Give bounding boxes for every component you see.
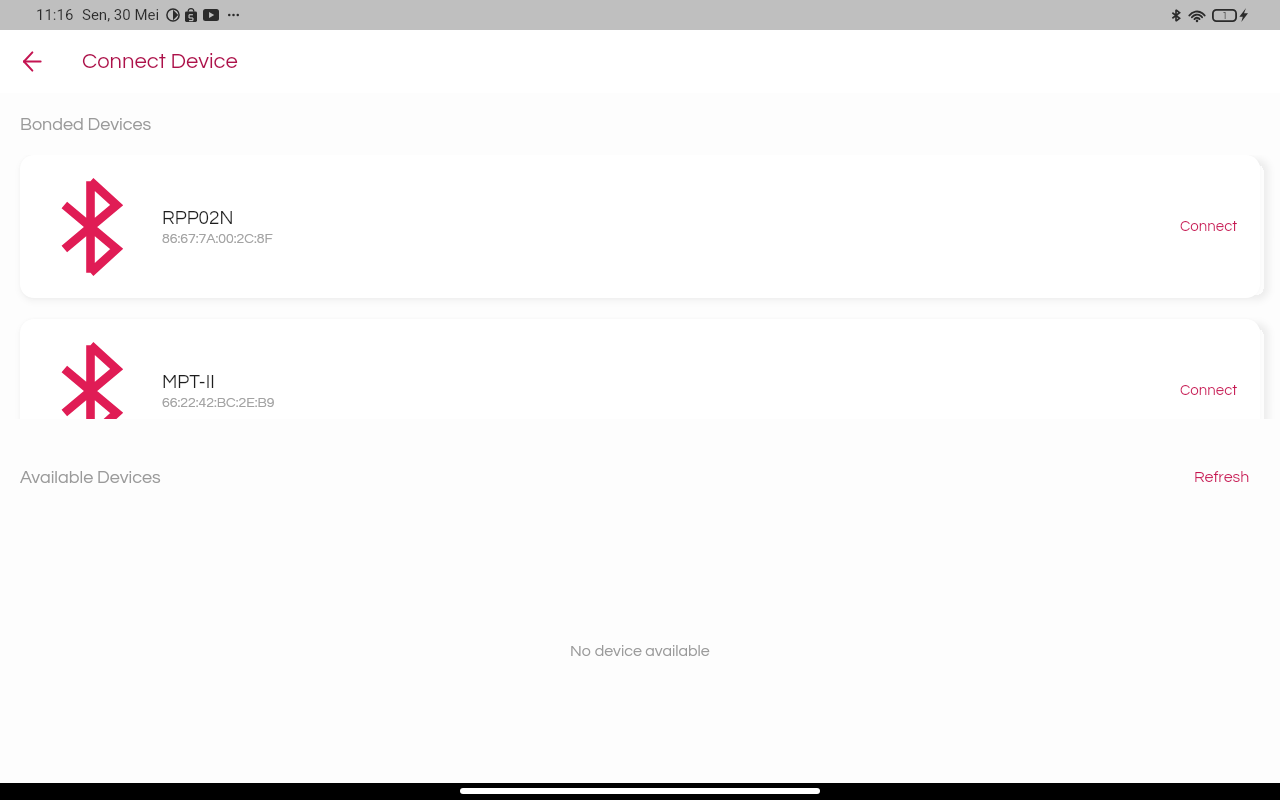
staticText: Connect Device [82, 50, 238, 73]
button[interactable]: Back [0, 30, 63, 93]
button[interactable]: MPT-II [20, 319, 1260, 419]
button[interactable]: Connect [1158, 369, 1260, 412]
staticText: 1 [1222, 11, 1228, 21]
staticText: Connect [1180, 219, 1238, 234]
staticText: RPP02N [162, 208, 234, 228]
staticText: 86:67:7A:00:2C:8F [162, 232, 273, 246]
staticText: 11:16 [36, 6, 74, 24]
staticText: Connect [1180, 383, 1238, 398]
staticText: MPT-II [162, 372, 215, 392]
staticText: Available Devices [20, 468, 161, 487]
staticText: Sen, 30 Mei [82, 6, 160, 24]
staticText: Refresh [1194, 469, 1250, 485]
staticText: Bonded Devices [20, 115, 152, 134]
staticText: 66:22:42:BC:2E:B9 [162, 396, 275, 410]
button[interactable]: Refresh [1164, 461, 1280, 493]
button[interactable]: RPP02N [20, 155, 1260, 298]
button[interactable]: Connect [1158, 205, 1260, 248]
staticText: No device available [570, 643, 710, 659]
